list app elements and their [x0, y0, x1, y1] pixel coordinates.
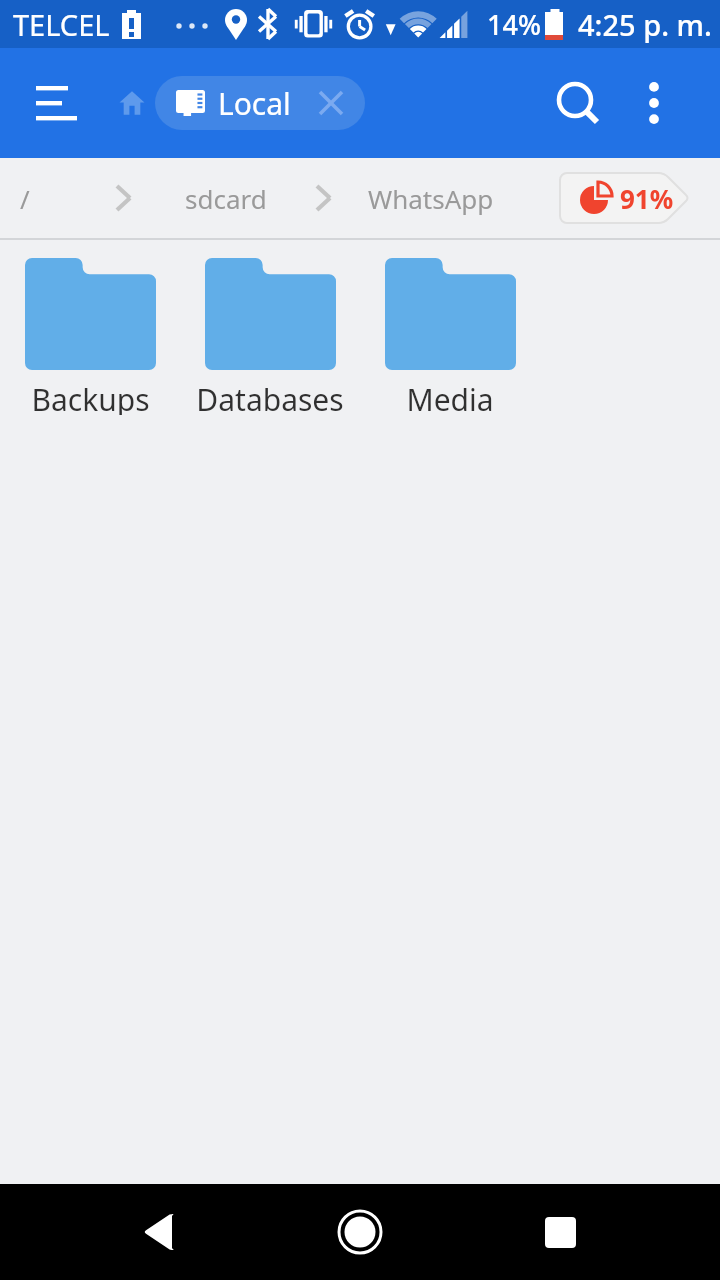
button[interactable]: Back — [120, 1184, 200, 1280]
button[interactable]: Recent apps — [520, 1184, 600, 1280]
button[interactable]: Home — [104, 74, 160, 130]
button[interactable]: sdcard — [183, 171, 269, 226]
staticText: TELCEL — [13, 5, 110, 44]
button[interactable]: Backups — [0, 240, 180, 415]
staticText: Backups — [31, 379, 150, 415]
staticText: sdcard — [185, 181, 267, 216]
button[interactable]: More options — [626, 75, 682, 131]
staticText: 14% — [487, 6, 541, 43]
button[interactable]: Databases — [180, 240, 360, 415]
staticText: 91% — [620, 181, 674, 216]
button[interactable]: Navigation menu — [19, 66, 94, 142]
button[interactable]: Search — [546, 71, 610, 135]
staticText: / — [20, 181, 30, 216]
staticText: 4:25 p. m. — [578, 5, 712, 44]
button[interactable]: Home — [320, 1184, 400, 1280]
button[interactable]: Media — [360, 240, 540, 415]
button[interactable]: 91% — [560, 173, 688, 223]
staticText: Databases — [196, 379, 344, 415]
button[interactable]: / — [18, 171, 32, 226]
button[interactable]: Local — [155, 76, 365, 130]
staticText: Local — [218, 83, 291, 124]
staticText: Media — [406, 379, 494, 415]
button[interactable]: WhatsApp — [366, 171, 496, 226]
staticText: WhatsApp — [368, 181, 494, 216]
